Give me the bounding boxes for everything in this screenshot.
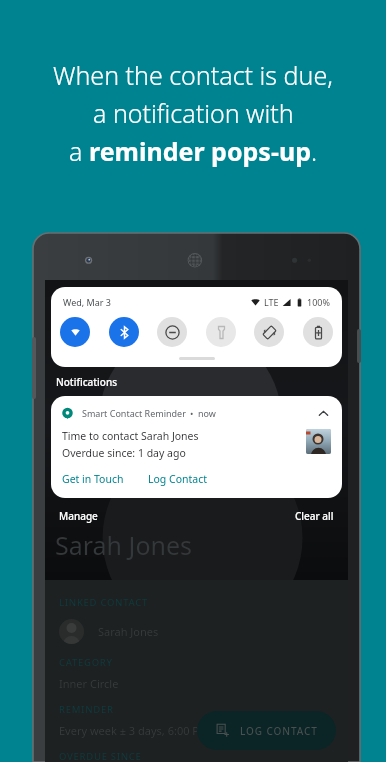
staticText: REMINDER bbox=[59, 703, 114, 716]
staticText: LTE bbox=[264, 296, 279, 308]
staticText: When the contact is due, bbox=[53, 58, 333, 92]
staticText: a notification with bbox=[93, 96, 294, 130]
button[interactable]: Log Contact bbox=[144, 469, 212, 489]
staticText: OVERDUE SINCE bbox=[59, 750, 142, 762]
staticText: CATEGORY bbox=[59, 656, 113, 669]
staticText: LINKED CONTACT bbox=[59, 596, 149, 609]
staticText: . bbox=[311, 134, 318, 168]
staticText: Every week ± 3 days, 6:00 PM bbox=[59, 723, 209, 738]
staticText: Overdue since: 1 day ago bbox=[62, 446, 186, 460]
staticText: Wed, Mar 3 bbox=[63, 296, 111, 308]
staticText: Log Contact bbox=[148, 472, 208, 486]
button[interactable]: LOG CONTACT bbox=[197, 711, 336, 750]
button[interactable]: Manage bbox=[56, 505, 101, 527]
button[interactable]: Collapse bbox=[315, 405, 331, 421]
staticText: Clear all bbox=[295, 509, 334, 523]
staticText: Smart Contact Reminder bbox=[82, 407, 186, 419]
staticText: Sarah Jones bbox=[98, 624, 159, 639]
button[interactable]: Wi-Fi bbox=[60, 317, 90, 347]
button[interactable]: Auto-rotate bbox=[254, 317, 284, 347]
staticText: • bbox=[190, 407, 194, 419]
staticText: a bbox=[69, 134, 89, 168]
button[interactable]: Do not disturb bbox=[157, 317, 187, 347]
staticText: Inner Circle bbox=[59, 676, 119, 691]
staticText: Notifications bbox=[56, 375, 118, 389]
button[interactable]: Smart Contact Reminder bbox=[51, 396, 342, 498]
button[interactable]: Flashlight bbox=[206, 317, 236, 347]
button[interactable]: Bluetooth bbox=[109, 317, 139, 347]
staticText: Time to contact Sarah Jones bbox=[62, 429, 199, 443]
staticText: reminder pops-up bbox=[89, 134, 311, 168]
button[interactable]: Battery saver bbox=[303, 317, 333, 347]
button[interactable]: Clear all bbox=[292, 505, 337, 527]
staticText: now bbox=[198, 407, 216, 419]
staticText: Get in Touch bbox=[62, 472, 124, 486]
staticText: LOG CONTACT bbox=[240, 724, 318, 738]
button[interactable]: Get in Touch bbox=[58, 469, 128, 489]
staticText: Manage bbox=[59, 509, 98, 523]
staticText: Sarah Jones bbox=[55, 528, 193, 562]
staticText: 100% bbox=[307, 296, 330, 308]
